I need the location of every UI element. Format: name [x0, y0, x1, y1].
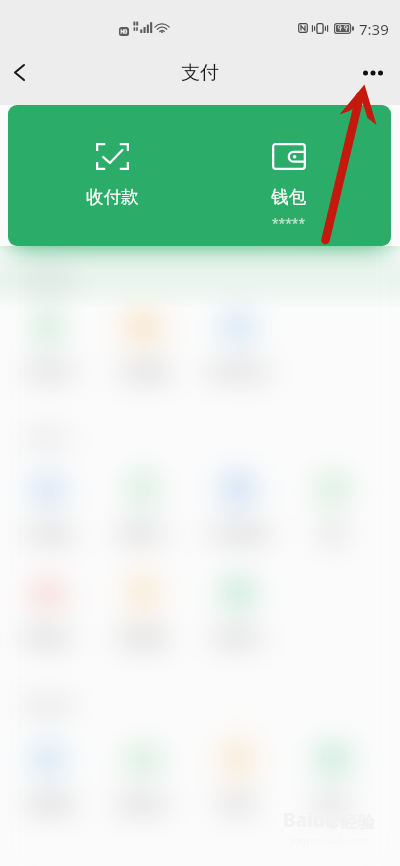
staticText: 钱包 [271, 186, 306, 208]
button[interactable]: More options [356, 48, 400, 97]
button[interactable]: 手机充值 [0, 313, 95, 383]
button[interactable]: 出行服务 [0, 475, 95, 545]
staticText: 收付款 [86, 186, 139, 208]
button[interactable]: 酒店 [285, 475, 380, 545]
staticText: 经验 [341, 812, 375, 833]
button[interactable]: 加油服务 [95, 579, 190, 649]
staticText: ***** [272, 215, 306, 231]
staticText: 7:39 [359, 19, 389, 39]
staticText: ***** [272, 215, 306, 231]
button[interactable]: 唯品会 [285, 745, 380, 815]
staticText: 收付款 [86, 186, 139, 208]
button[interactable]: 信用卡还款 [190, 313, 285, 383]
staticText: 钱包 [271, 186, 306, 208]
button[interactable]: 京东购物 [0, 745, 95, 815]
button[interactable]: 生活缴费 [95, 313, 190, 383]
staticText: Baidu [283, 807, 338, 833]
button[interactable]: 美团外卖 [95, 745, 190, 815]
staticText: 支付 [181, 61, 219, 85]
button[interactable]: 收付款 [64, 105, 160, 246]
button[interactable]: 收付款 [64, 105, 160, 246]
button[interactable]: 同程旅行 [0, 579, 95, 649]
button[interactable]: 滴滴出行 [95, 475, 190, 545]
button[interactable]: 智慧停车 [190, 579, 285, 649]
button[interactable]: 火车票机票 [190, 475, 285, 545]
button[interactable]: Back [0, 48, 44, 97]
button[interactable]: 钱包 [240, 105, 336, 246]
button[interactable]: 拼多多 [190, 745, 285, 815]
button[interactable]: 钱包 [240, 105, 336, 246]
